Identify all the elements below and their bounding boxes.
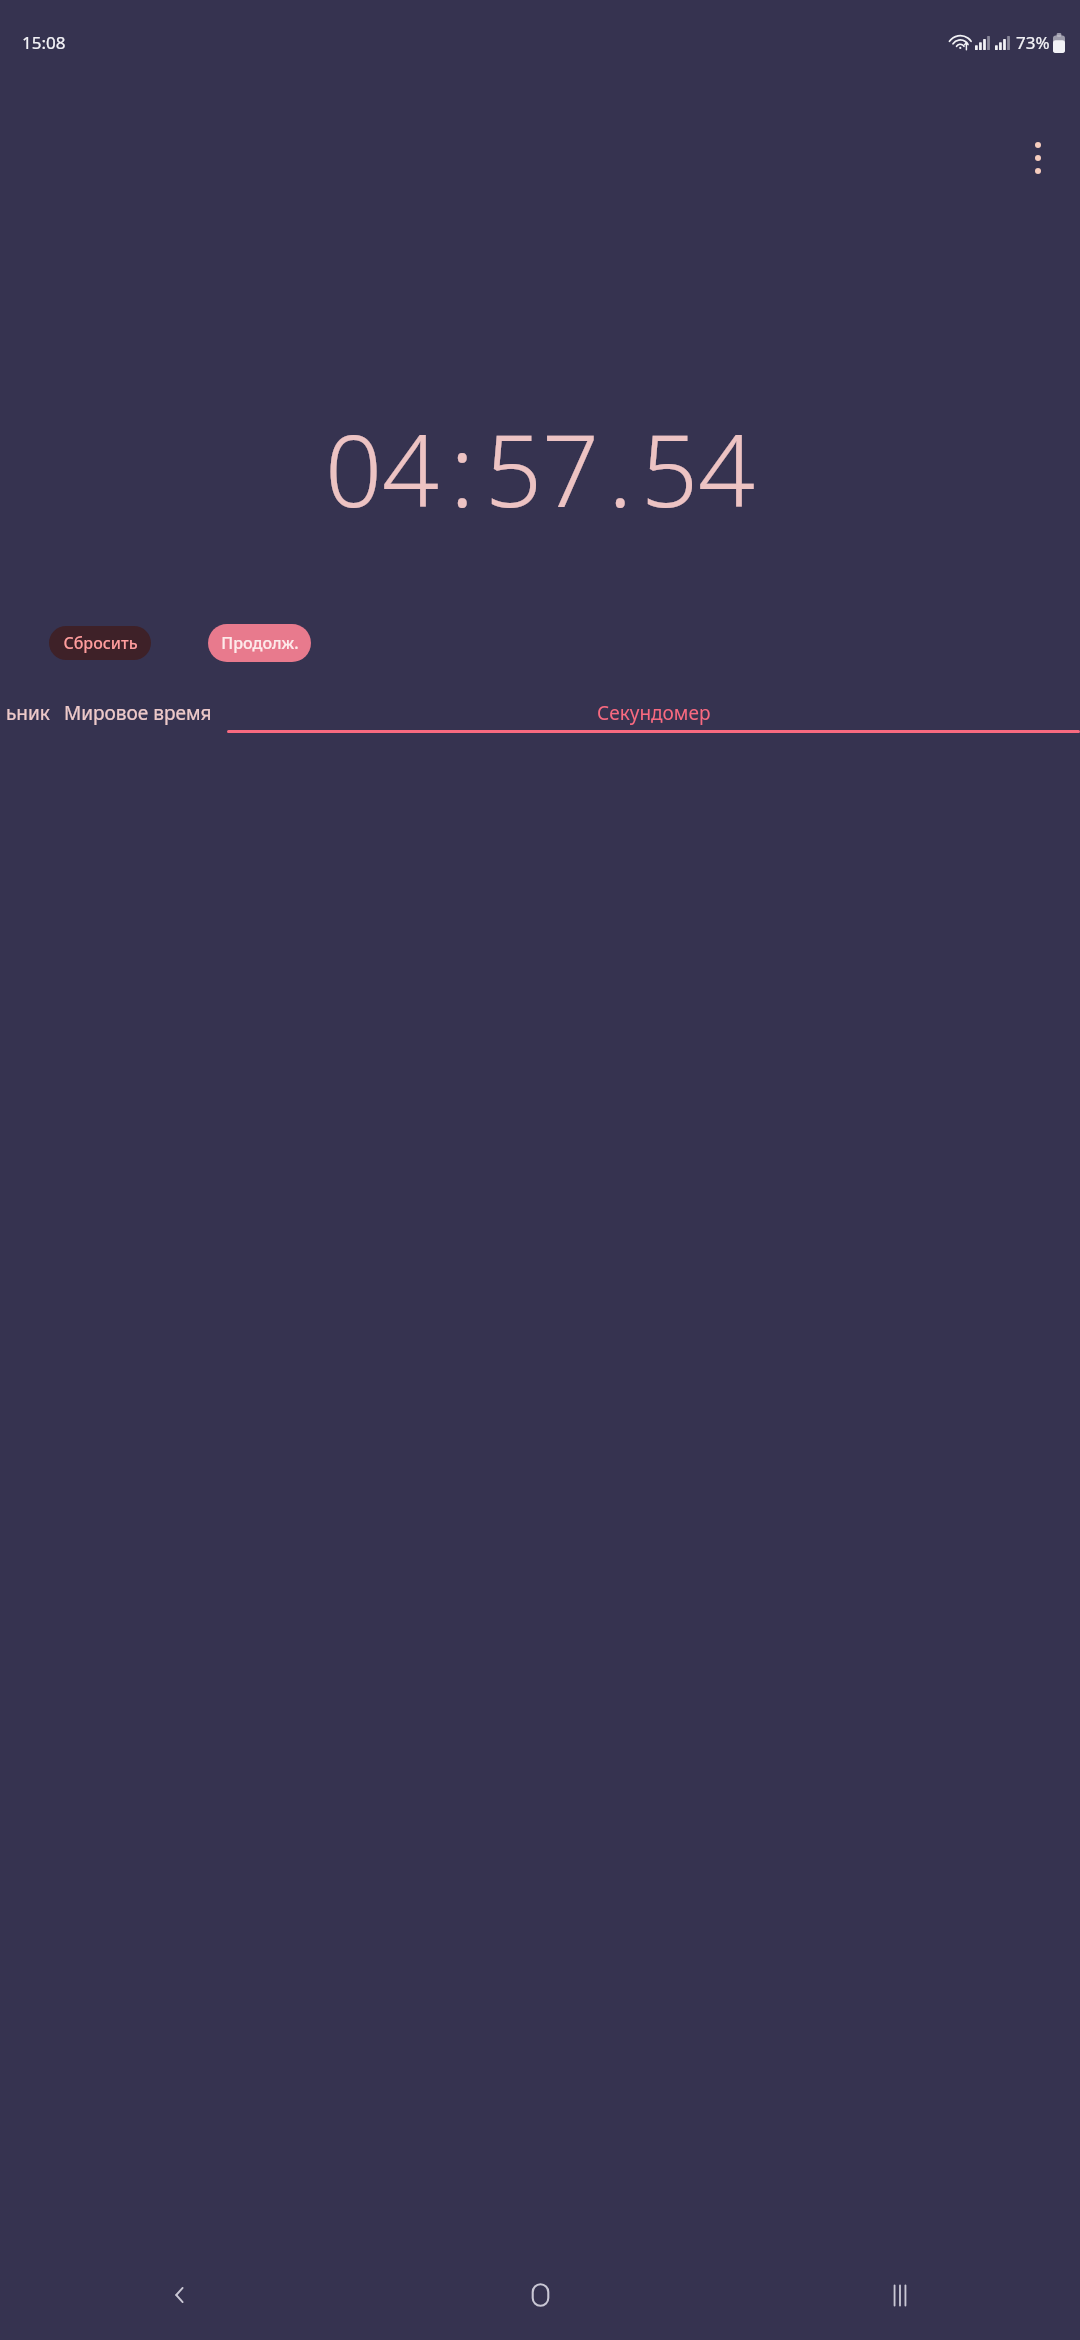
button[interactable]: Секундомер — [227, 700, 1080, 733]
button[interactable]: Мировое время — [64, 700, 212, 726]
staticText: Секундомер — [597, 700, 711, 726]
staticText: 57 — [485, 400, 600, 536]
button[interactable]: Back — [0, 2250, 360, 2340]
staticText: : — [450, 400, 475, 536]
staticText: Сбросить — [63, 632, 138, 654]
staticText: 04 — [325, 400, 440, 536]
staticText: ьник — [6, 700, 50, 726]
staticText: Мировое время — [64, 700, 212, 726]
staticText: Продолж. — [221, 632, 299, 654]
staticText: 15:08 — [22, 31, 66, 54]
button[interactable]: Recents — [720, 2250, 1080, 2340]
staticText: 73% — [1016, 31, 1050, 54]
button[interactable]: More options — [1008, 128, 1068, 188]
button[interactable]: Home — [360, 2250, 720, 2340]
staticText: . — [608, 400, 633, 536]
staticText: 54 — [641, 400, 756, 536]
button[interactable]: Сбросить — [49, 626, 151, 660]
button[interactable]: Продолж. — [208, 624, 311, 662]
button[interactable]: ьник — [0, 700, 50, 726]
